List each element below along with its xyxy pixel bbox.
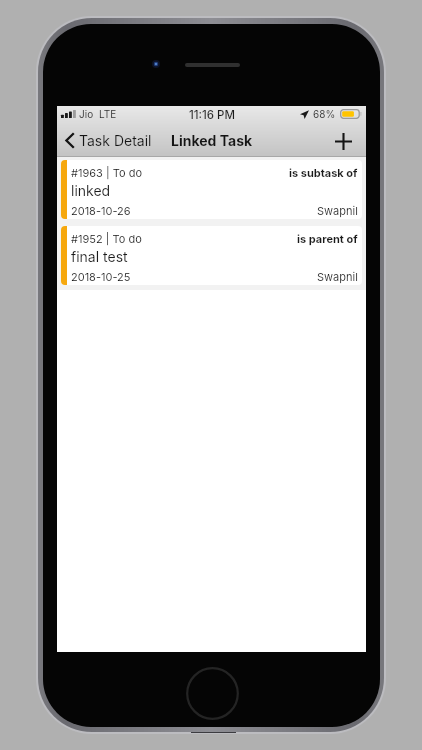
staticText: final test <box>71 248 128 265</box>
staticText: #1963 | To do <box>71 166 142 179</box>
staticText: Linked Task <box>171 132 253 149</box>
staticText: 11:16 PM <box>189 108 235 122</box>
staticText: Task Detail <box>79 132 152 149</box>
staticText: 2018-10-26 <box>71 204 131 217</box>
button[interactable]: #1952 | To do <box>61 226 362 285</box>
staticText: linked <box>71 182 111 199</box>
staticText: 68% <box>313 108 336 120</box>
button[interactable]: #1963 | To do <box>61 160 362 219</box>
staticText: Jio <box>79 108 94 120</box>
staticText: LTE <box>99 108 117 120</box>
staticText: #1952 | To do <box>71 232 142 245</box>
staticText: Swapnil <box>317 204 358 217</box>
staticText: Swapnil <box>317 270 358 283</box>
button[interactable]: Task Detail <box>57 124 158 157</box>
button[interactable]: Add linked task <box>327 125 359 157</box>
staticText: is parent of <box>297 232 358 245</box>
staticText: is subtask of <box>289 166 358 179</box>
staticText: 2018-10-25 <box>71 270 131 283</box>
